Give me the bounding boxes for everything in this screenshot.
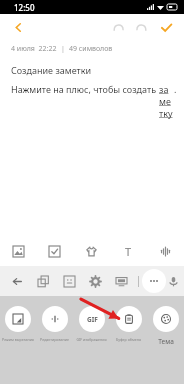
staticText: | bbox=[61, 44, 65, 54]
button[interactable]: Settings bbox=[82, 268, 108, 294]
button[interactable]: Undo bbox=[106, 15, 130, 39]
button[interactable]: Back bbox=[4, 268, 30, 294]
staticText: Создание заметки bbox=[11, 64, 92, 76]
staticText: Буфер обмена bbox=[116, 337, 141, 342]
staticText: Редактирование текста bbox=[36, 337, 73, 342]
button[interactable]: Clipboard history bbox=[30, 268, 56, 294]
staticText: 4 июля 22:22 bbox=[11, 44, 57, 54]
button[interactable]: Back bbox=[6, 15, 30, 39]
button[interactable]: GIF bbox=[73, 306, 110, 342]
button[interactable]: Checklist bbox=[36, 236, 73, 266]
button[interactable]: Text format bbox=[110, 236, 147, 266]
button[interactable]: Редактирование текста bbox=[36, 306, 73, 342]
button[interactable]: More bbox=[142, 269, 166, 293]
button[interactable]: Тема bbox=[147, 306, 184, 346]
staticText: Режим вырезания bbox=[2, 337, 34, 342]
button[interactable]: Буфер обмена bbox=[110, 306, 147, 342]
button[interactable]: Redo bbox=[130, 15, 154, 39]
button[interactable]: Режим вырезания bbox=[0, 306, 36, 342]
button[interactable]: Share screen bbox=[108, 268, 134, 294]
staticText: заметку bbox=[159, 83, 174, 119]
button[interactable]: Voice input bbox=[166, 268, 180, 294]
button[interactable]: Insert image bbox=[0, 236, 36, 266]
staticText: Тема bbox=[158, 337, 174, 346]
staticText: T bbox=[125, 244, 132, 259]
button[interactable]: Audio bbox=[147, 236, 184, 266]
staticText: 12:50 bbox=[14, 2, 35, 13]
staticText: GIF bbox=[87, 315, 98, 324]
button[interactable]: Save bbox=[154, 15, 178, 39]
staticText: GIF изображения bbox=[76, 337, 107, 342]
button[interactable]: Style bbox=[73, 236, 110, 266]
button[interactable]: Stickers bbox=[56, 268, 82, 294]
staticText: Нажмите на плюс, чтобы создать bbox=[11, 83, 159, 95]
staticText: 49 символов bbox=[69, 44, 113, 54]
